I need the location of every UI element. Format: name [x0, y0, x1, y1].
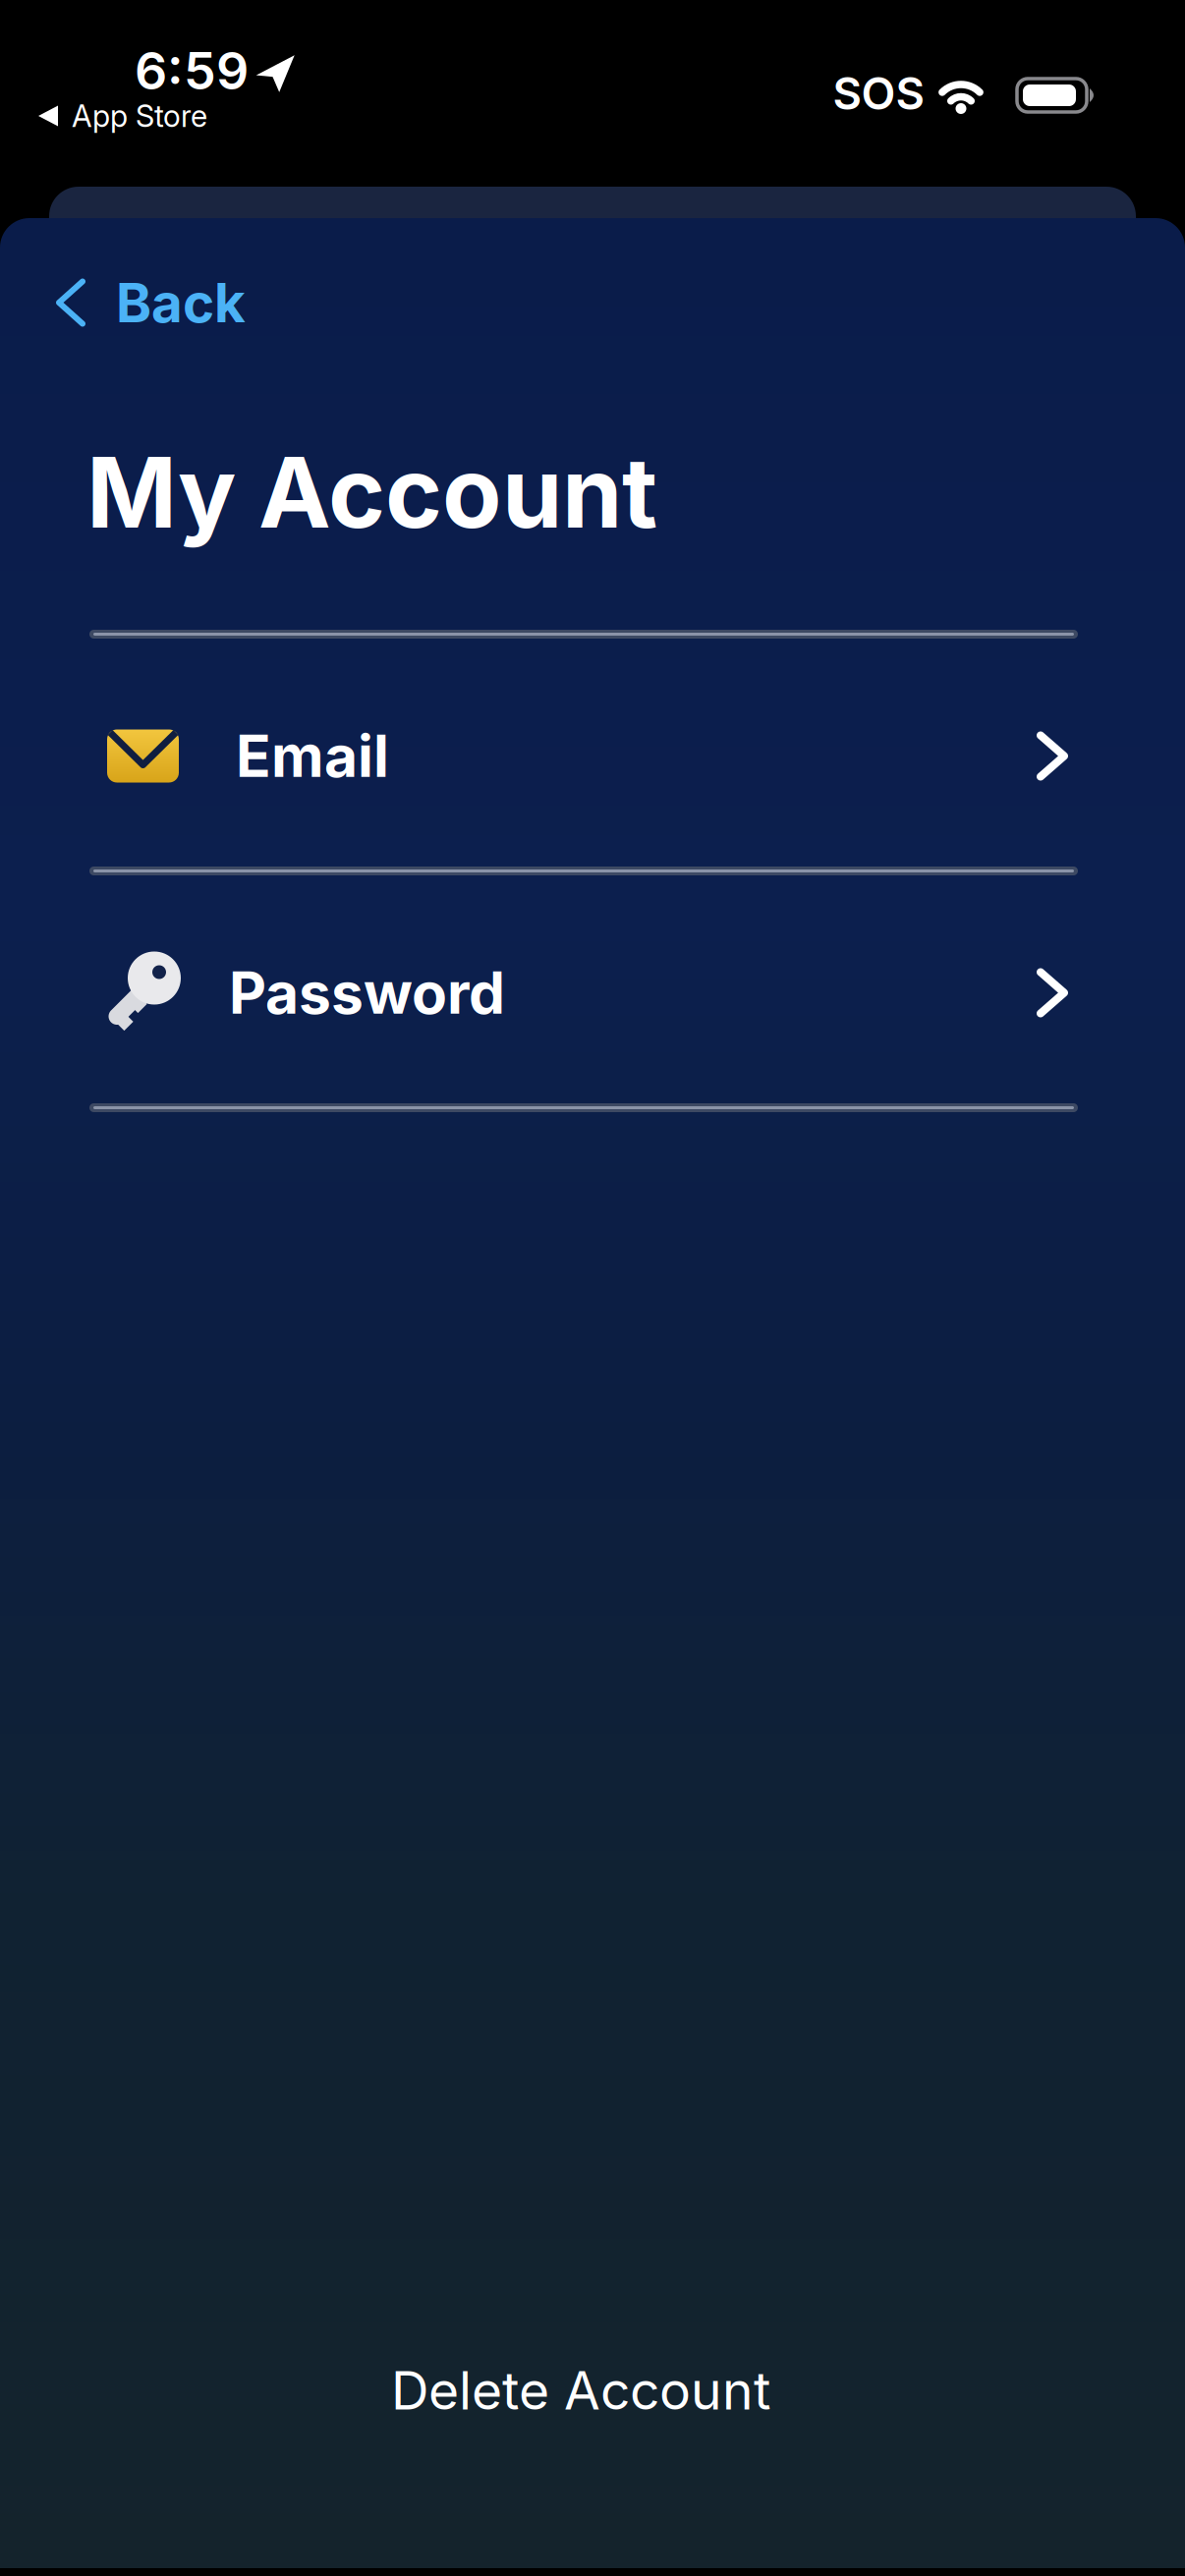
staticText: Delete Account [391, 2359, 770, 2421]
staticText: 6:59 [135, 41, 249, 101]
staticText: Password [229, 959, 505, 1027]
staticText: Back [116, 271, 246, 334]
button[interactable]: Back to App Store [38, 94, 207, 138]
button[interactable]: Delete Account [0, 2346, 1173, 2435]
staticText: SOS [833, 67, 924, 120]
button[interactable]: Email [90, 641, 1087, 871]
button[interactable]: Password [90, 877, 1087, 1108]
button[interactable]: Back [59, 267, 246, 338]
staticText: My Account [86, 435, 657, 549]
staticText: Email [236, 722, 389, 790]
staticText: App Store [72, 98, 207, 134]
